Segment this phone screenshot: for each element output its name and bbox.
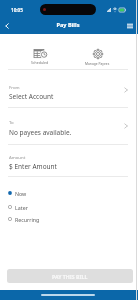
staticText: Recurring <box>15 216 40 223</box>
staticText: Amount <box>9 154 26 160</box>
staticText: PAY THIS BILL <box>52 273 88 280</box>
staticText: Pay Bills <box>0 21 137 29</box>
button[interactable]: Manage Payees <box>78 46 116 68</box>
button[interactable]: PAY THIS BILL <box>7 269 133 283</box>
staticText: Later <box>15 204 28 211</box>
button[interactable] <box>0 69 138 107</box>
staticText: Select Account <box>9 92 54 101</box>
staticText: $ Enter Amount <box>9 162 57 171</box>
button[interactable] <box>0 144 138 176</box>
staticText: 10:05 <box>11 7 23 13</box>
button[interactable]: Menu <box>123 19 136 32</box>
staticText: Now <box>15 190 27 197</box>
button[interactable]: Now <box>0 187 138 199</box>
staticText: Scheduled <box>31 60 49 65</box>
staticText: Manage Payees <box>85 61 110 65</box>
button[interactable] <box>0 107 138 145</box>
staticText: From <box>9 84 20 90</box>
button[interactable]: Recurring <box>0 213 138 225</box>
staticText: No payees available. <box>9 128 72 137</box>
button[interactable]: Later <box>0 201 138 213</box>
staticText: To <box>9 119 14 125</box>
button[interactable]: Back <box>0 19 13 32</box>
button[interactable]: Scheduled <box>22 46 58 68</box>
